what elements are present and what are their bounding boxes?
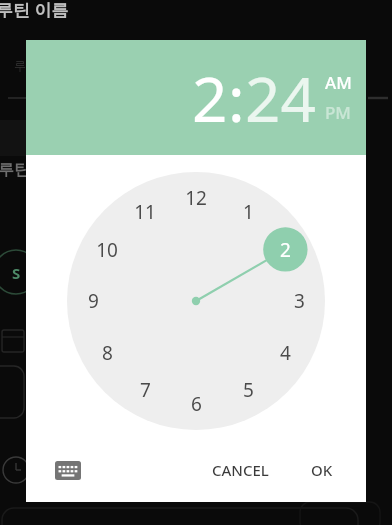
button[interactable]: 24 [245, 56, 316, 140]
staticText: 8 [102, 340, 113, 366]
staticText: 루틴 이름 [0, 0, 69, 21]
staticText: CANCEL [212, 460, 269, 480]
staticText: 7 [140, 377, 151, 403]
button[interactable]: 3 [277, 279, 321, 323]
staticText: 5 [243, 377, 254, 403]
button[interactable]: CANCEL [202, 452, 279, 488]
staticText: 2 [280, 237, 291, 263]
button[interactable]: 5 [226, 368, 270, 412]
staticText: OK [311, 460, 333, 480]
staticText: 9 [88, 288, 99, 314]
button[interactable]: AM [325, 71, 352, 94]
button[interactable]: 10 [85, 228, 129, 272]
button[interactable]: OK [301, 452, 343, 488]
staticText: 4 [280, 340, 291, 366]
staticText: 2 [192, 56, 228, 140]
staticText: 10 [96, 237, 118, 263]
button[interactable]: 7 [123, 368, 167, 412]
button[interactable]: 4 [263, 331, 307, 375]
button[interactable]: 8 [85, 331, 129, 375]
staticText: 24 [245, 56, 316, 140]
staticText: 루 [14, 58, 26, 73]
staticText: 1 [243, 199, 254, 225]
staticText: S [12, 263, 21, 283]
button[interactable]: 12 [174, 176, 218, 220]
button[interactable]: 6 [174, 382, 218, 426]
staticText: 6 [191, 391, 202, 417]
button[interactable]: 1 [226, 190, 270, 234]
button[interactable]: 2 [263, 228, 307, 272]
staticText: AM [325, 71, 352, 94]
staticText: 3 [294, 288, 305, 314]
staticText: : [228, 56, 245, 140]
button[interactable]: 2 [192, 56, 228, 140]
staticText: PM [325, 101, 351, 124]
button[interactable]: Switch to text input [48, 450, 88, 490]
button[interactable]: PM [325, 101, 351, 124]
button[interactable]: 11 [123, 190, 167, 234]
staticText: 11 [134, 199, 156, 225]
staticText: 12 [185, 185, 207, 211]
staticText: 루틴 [0, 160, 30, 180]
button[interactable]: 9 [71, 279, 115, 323]
